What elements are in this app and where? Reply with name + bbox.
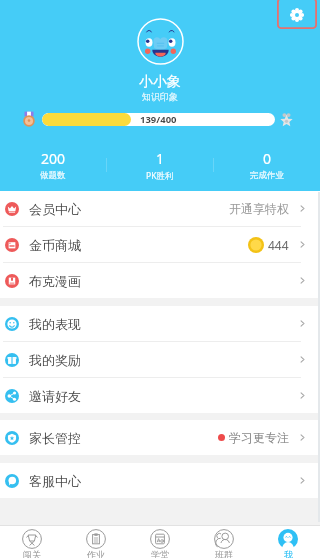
staticText: PK胜利 <box>146 170 174 182</box>
staticText: 1 <box>156 149 165 168</box>
button[interactable]: Settings <box>277 0 317 29</box>
button[interactable]: 1 <box>107 148 213 182</box>
staticText: 200 <box>41 149 66 168</box>
staticText: 金币商城 <box>29 237 81 253</box>
staticText: 作业 <box>87 549 105 558</box>
staticText: 客服中心 <box>29 473 81 489</box>
staticText: 我的奖励 <box>29 352 81 368</box>
staticText: 知识印象 <box>142 91 178 102</box>
staticText: 完成作业 <box>250 170 284 181</box>
button[interactable]: 我的奖励 <box>0 342 320 377</box>
button[interactable]: 会员中心 <box>0 191 320 226</box>
staticText: 我 <box>284 549 293 558</box>
staticText: 学习更专注 <box>229 430 289 445</box>
button[interactable]: 金币商城 <box>0 227 320 262</box>
button[interactable]: 邀请好友 <box>0 378 320 413</box>
staticText: 139/400 <box>140 113 177 126</box>
button[interactable]: Avatar <box>137 18 184 65</box>
staticText: 家长管控 <box>29 430 81 446</box>
button[interactable]: 200 <box>0 148 106 182</box>
staticText: 班群 <box>215 549 233 558</box>
button[interactable]: 我的表现 <box>0 306 320 341</box>
button[interactable]: 学堂 <box>128 526 192 558</box>
staticText: 布克漫画 <box>29 273 81 289</box>
button[interactable]: 布克漫画 <box>0 263 320 298</box>
staticText: 邀请好友 <box>29 388 81 404</box>
staticText: 开通享特权 <box>229 201 289 216</box>
button[interactable]: 0 <box>214 148 320 182</box>
button[interactable]: 班群 <box>192 526 256 558</box>
staticText: 闯关 <box>23 549 41 558</box>
button[interactable]: 作业 <box>64 526 128 558</box>
staticText: 会员中心 <box>29 201 81 217</box>
button[interactable]: 闯关 <box>0 526 64 558</box>
button[interactable]: 我 <box>256 526 320 558</box>
staticText: 0 <box>263 149 272 168</box>
staticText: 444 <box>268 237 289 253</box>
button[interactable]: 客服中心 <box>0 463 320 498</box>
staticText: 我的表现 <box>29 316 81 332</box>
staticText: 学堂 <box>151 549 169 558</box>
staticText: 小小象 <box>139 73 181 91</box>
staticText: 做题数 <box>40 170 66 181</box>
button[interactable]: 家长管控 <box>0 420 320 455</box>
